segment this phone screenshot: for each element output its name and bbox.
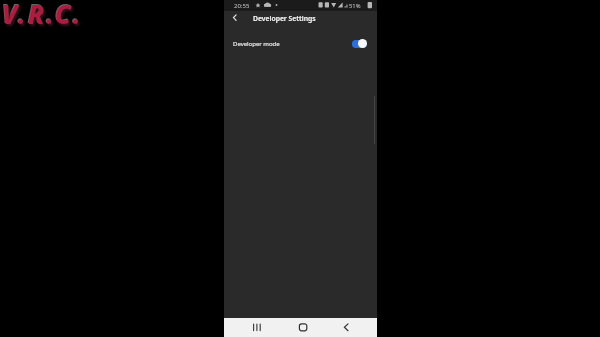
button[interactable] [250, 320, 264, 335]
staticText: 51% [349, 2, 361, 10]
staticText: 20:55 [234, 2, 250, 10]
staticText: Developer mode [233, 40, 280, 48]
button[interactable] [230, 13, 240, 23]
staticText: Developer Settings [253, 14, 316, 23]
button[interactable]: Developer mode [224, 35, 377, 52]
button[interactable] [339, 320, 353, 335]
button[interactable] [296, 320, 310, 335]
staticText: V.R.C. [1, 0, 82, 30]
staticText: V.R.C. [2, 0, 83, 31]
